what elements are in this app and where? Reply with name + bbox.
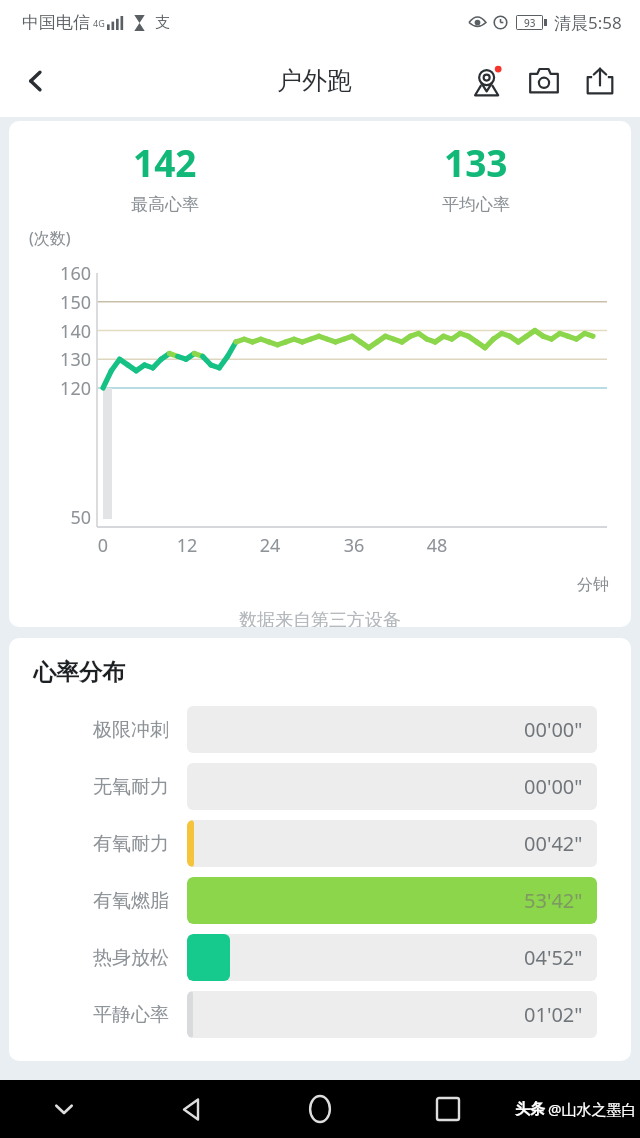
button[interactable]: Back xyxy=(128,1080,256,1138)
staticText: 160 xyxy=(51,261,91,286)
staticText: 93 xyxy=(524,16,536,29)
button[interactable]: 极限冲刺 xyxy=(9,701,631,758)
staticText: 04'52" xyxy=(524,944,583,971)
staticText: 4G xyxy=(93,17,105,29)
button[interactable]: Share xyxy=(572,53,628,109)
staticText: 支 xyxy=(155,13,170,32)
staticText: 140 xyxy=(51,319,91,344)
staticText: 户外跑 xyxy=(277,65,352,96)
button[interactable]: 平静心率 xyxy=(9,986,631,1043)
button[interactable]: Home xyxy=(256,1080,384,1138)
staticText: 无氧耐力 xyxy=(93,775,169,799)
staticText: 0 xyxy=(83,533,123,558)
button[interactable]: Hide keyboard xyxy=(0,1080,128,1138)
staticText: 分钟 xyxy=(577,575,609,595)
staticText: 有氧燃脂 xyxy=(93,889,169,913)
button[interactable]: Recents xyxy=(384,1080,512,1138)
staticText: 24 xyxy=(250,533,290,558)
staticText: 00'00" xyxy=(524,773,583,800)
staticText: 清晨5:58 xyxy=(554,11,622,34)
button[interactable]: Back xyxy=(10,55,62,107)
staticText: 中国电信 xyxy=(22,12,90,33)
button[interactable]: 有氧耐力 xyxy=(9,815,631,872)
staticText: @山水之墨白 xyxy=(548,1099,637,1119)
staticText: 130 xyxy=(51,347,91,372)
staticText: 133 xyxy=(444,137,508,187)
staticText: 01'02" xyxy=(524,1001,583,1028)
staticText: 平均心率 xyxy=(442,194,510,215)
staticText: 50 xyxy=(51,505,91,530)
staticText: 53'42" xyxy=(524,887,583,914)
button[interactable]: Camera xyxy=(516,53,572,109)
button[interactable]: 热身放松 xyxy=(9,929,631,986)
staticText: 36 xyxy=(334,533,374,558)
staticText: 00'42" xyxy=(524,830,583,857)
staticText: 150 xyxy=(51,290,91,315)
staticText: 120 xyxy=(51,376,91,401)
staticText: 12 xyxy=(167,533,207,558)
staticText: 头条 xyxy=(515,1100,545,1119)
staticText: 有氧耐力 xyxy=(93,832,169,856)
staticText: 142 xyxy=(133,137,197,187)
staticText: 数据来自第三方设备 xyxy=(9,609,631,627)
button[interactable]: Map xyxy=(460,53,516,109)
button[interactable]: 无氧耐力 xyxy=(9,758,631,815)
staticText: 热身放松 xyxy=(93,946,169,970)
staticText: (次数) xyxy=(29,227,71,249)
staticText: 心率分布 xyxy=(33,658,125,687)
staticText: 最高心率 xyxy=(131,194,199,215)
staticText: 平静心率 xyxy=(93,1003,169,1027)
staticText: 48 xyxy=(417,533,457,558)
staticText: 极限冲刺 xyxy=(93,718,169,742)
staticText: 00'00" xyxy=(524,716,583,743)
button[interactable]: 有氧燃脂 xyxy=(9,872,631,929)
